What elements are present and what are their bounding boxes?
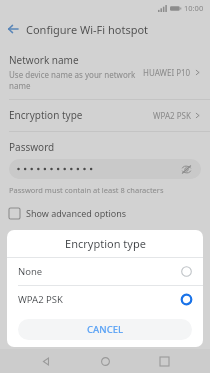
button[interactable]: Show password [9, 159, 201, 179]
other: Show password [180, 163, 193, 176]
staticText: Password [9, 140, 55, 154]
staticText: HUAWEI P10 [143, 67, 191, 78]
staticText: Configure Wi-Fi hotspot [26, 22, 149, 37]
staticText: Password must contain at least 8 charact… [9, 185, 164, 195]
button[interactable]: Back [0, 16, 26, 42]
button[interactable]: WPA2 PSK [7, 286, 203, 313]
staticText: Network name [9, 53, 79, 67]
button[interactable]: Network name [0, 50, 210, 94]
button[interactable]: Back [33, 349, 59, 373]
staticText: 10:00 [184, 3, 204, 13]
staticText: CANCEL [87, 323, 124, 336]
button[interactable]: Show advanced options [0, 205, 210, 221]
button[interactable]: CANCEL [18, 319, 192, 340]
button[interactable]: None [7, 258, 203, 285]
button[interactable]: Home [92, 349, 118, 373]
staticText: None [18, 265, 43, 278]
button[interactable]: Encryption type [0, 106, 210, 124]
staticText: Use device name as your network name [9, 69, 139, 91]
staticText: Encryption type [9, 108, 83, 122]
button[interactable]: Recents [151, 349, 177, 373]
staticText: WPA2 PSK [153, 110, 191, 121]
staticText: Show advanced options [26, 207, 127, 219]
staticText: WPA2 PSK [18, 293, 63, 306]
staticText: Encryption type [65, 236, 146, 251]
